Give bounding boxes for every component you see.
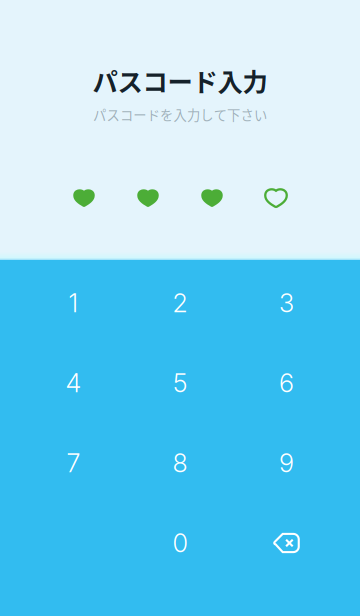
staticText: 4 xyxy=(65,368,81,398)
button[interactable]: 7 xyxy=(20,423,127,503)
staticText: 2 xyxy=(172,288,187,318)
button[interactable]: 1 xyxy=(20,263,127,343)
staticText: 5 xyxy=(173,368,187,398)
button[interactable]: 5 xyxy=(127,343,233,423)
staticText: 9 xyxy=(279,448,294,478)
button[interactable]: 0 xyxy=(127,503,233,583)
staticText: 0 xyxy=(172,528,187,558)
button[interactable]: 3 xyxy=(233,263,340,343)
staticText: 8 xyxy=(172,448,187,478)
staticText: 6 xyxy=(279,368,294,398)
staticText: 7 xyxy=(66,448,80,478)
button[interactable]: 2 xyxy=(127,263,233,343)
staticText: 1 xyxy=(68,288,78,318)
staticText: パスコード入力 xyxy=(92,62,267,99)
button[interactable]: 6 xyxy=(233,343,340,423)
button[interactable]: Delete xyxy=(233,503,340,583)
staticText: 3 xyxy=(279,288,294,318)
staticText: パスコードを入力して下さい xyxy=(93,105,267,124)
button[interactable]: 4 xyxy=(20,343,127,423)
button[interactable]: 8 xyxy=(127,423,233,503)
button[interactable]: 9 xyxy=(233,423,340,503)
